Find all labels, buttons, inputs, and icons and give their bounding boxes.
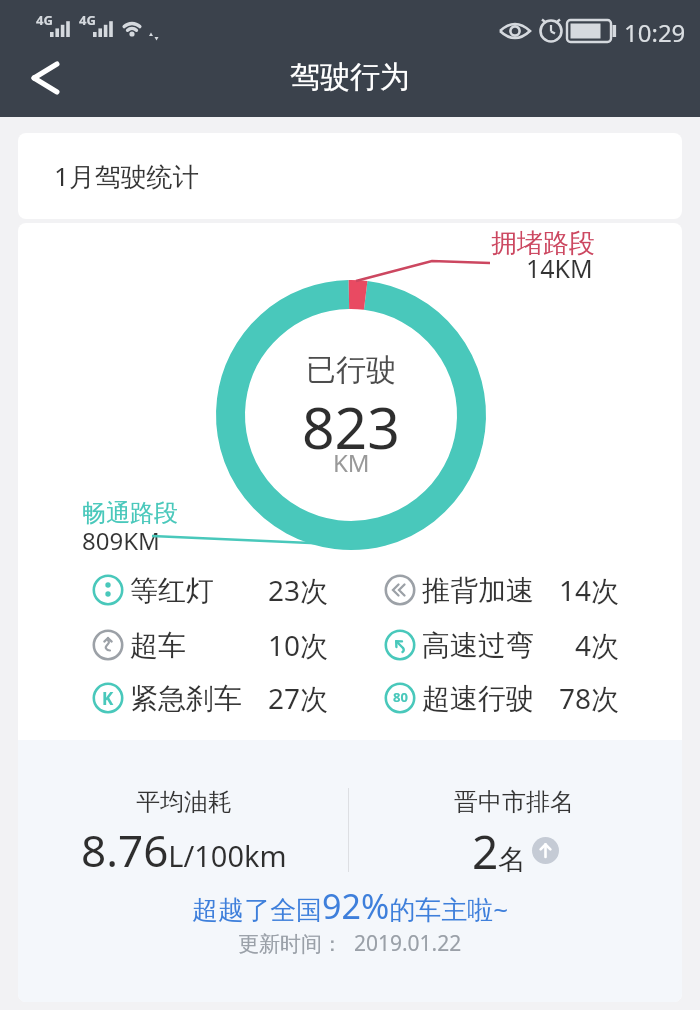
staticText: 超车 <box>130 628 186 663</box>
staticText: KM <box>333 446 370 479</box>
button[interactable] <box>90 619 333 671</box>
staticText: 超速行驶 <box>422 681 534 716</box>
staticText: 畅通路段 <box>82 498 178 528</box>
staticText: 78次 <box>559 679 620 717</box>
staticText: 8.76L/100km <box>81 820 287 880</box>
staticText: 80 <box>393 688 408 706</box>
staticText: 1月驾驶统计 <box>54 158 199 194</box>
staticText: K <box>102 687 114 710</box>
staticText: 等红灯 <box>130 573 214 608</box>
staticText: 14KM <box>526 251 593 285</box>
staticText: 拥堵路段 <box>491 227 595 260</box>
staticText: 823 <box>302 388 400 462</box>
staticText: 4G <box>36 11 53 29</box>
button[interactable]: 超越了全国92%的车主啦~ <box>18 881 682 931</box>
staticText: 10次 <box>268 626 329 664</box>
staticText: 2名 <box>472 820 527 880</box>
button[interactable] <box>90 672 333 724</box>
staticText: 27次 <box>268 679 329 717</box>
staticText: 4次 <box>575 626 620 664</box>
staticText: 晋中市排名 <box>454 787 574 817</box>
staticText: 10:29 <box>624 16 686 46</box>
button[interactable]: 1月驾驶统计 <box>18 133 682 219</box>
staticText: 更新时间： 2019.01.22 <box>238 929 462 958</box>
staticText: 推背加速 <box>422 573 534 608</box>
staticText: 平均油耗 <box>136 787 232 817</box>
staticText: 超越了全国92%的车主啦~ <box>192 883 509 929</box>
button[interactable]: 2名 <box>375 820 655 880</box>
button[interactable] <box>382 564 624 616</box>
staticText: 高速过弯 <box>422 628 534 663</box>
staticText: 4G <box>79 11 96 29</box>
button[interactable] <box>22 58 70 106</box>
button[interactable] <box>382 619 624 671</box>
button[interactable] <box>382 672 624 724</box>
staticText: 已行驶 <box>306 351 396 389</box>
staticText: 紧急刹车 <box>130 681 242 716</box>
button[interactable]: 8.76L/100km <box>44 820 324 880</box>
staticText: 809KM <box>82 524 160 557</box>
staticText: 14次 <box>559 571 620 609</box>
button[interactable] <box>90 564 333 616</box>
staticText: 23次 <box>268 571 329 609</box>
staticText: 驾驶行为 <box>290 58 410 96</box>
